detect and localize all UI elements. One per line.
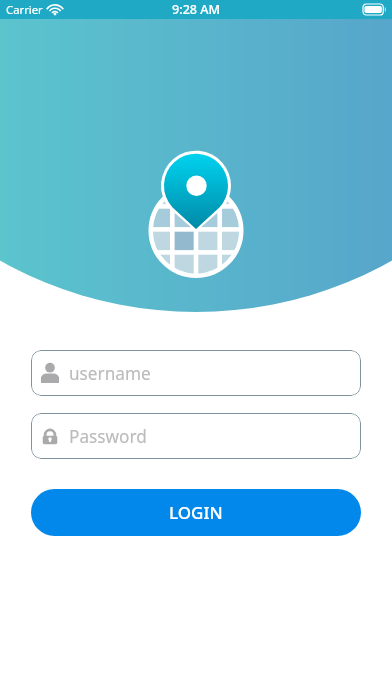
staticText: 9:28 AM	[172, 1, 221, 18]
button[interactable]: Password	[31, 413, 361, 459]
button[interactable]: username	[31, 350, 361, 396]
staticText: username	[69, 362, 151, 385]
staticText: LOGIN	[169, 501, 223, 524]
staticText: Carrier	[6, 2, 43, 17]
staticText: Password	[69, 425, 147, 448]
button[interactable]: LOGIN	[31, 489, 361, 536]
